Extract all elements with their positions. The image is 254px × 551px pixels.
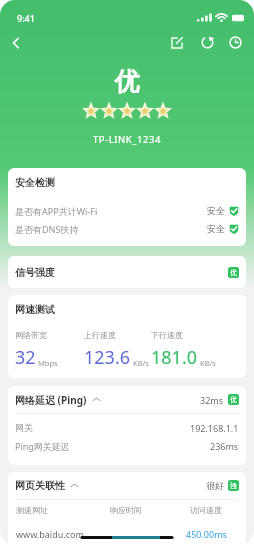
staticText: 很好: [206, 480, 224, 491]
staticText: 强: [230, 481, 237, 490]
button[interactable]: Refresh: [196, 31, 219, 54]
staticText: 网关: [15, 422, 33, 433]
staticText: 123.6: [84, 345, 131, 370]
staticText: Ping网关延迟: [15, 440, 70, 452]
staticText: 信号强度: [15, 266, 55, 279]
staticText: 下行速度: [151, 330, 183, 340]
button[interactable]: 是否有DNS扶持: [15, 220, 239, 237]
button[interactable]: 信号强度: [15, 256, 239, 288]
staticText: Mbps: [38, 358, 58, 368]
button[interactable]: Back: [4, 31, 28, 55]
staticText: 9:41: [17, 12, 35, 24]
staticText: 安全: [207, 223, 225, 234]
staticText: 访问速度: [190, 505, 222, 515]
staticText: 181.0: [151, 345, 198, 370]
staticText: 是否有DNS扶持: [15, 223, 79, 235]
staticText: 安全检测: [15, 176, 55, 189]
staticText: TP-LINK_1234: [0, 133, 254, 146]
staticText: 测速网址: [16, 505, 48, 515]
staticText: KB/s: [133, 358, 149, 368]
button[interactable]: 是否有APP共计Wi-Fi: [15, 202, 239, 219]
button[interactable]: 网页关联性: [15, 472, 239, 499]
staticText: 是否有APP共计Wi-Fi: [15, 205, 98, 217]
staticText: 网络带宽: [15, 330, 47, 340]
button[interactable]: Open in browser: [165, 31, 188, 54]
staticText: 响应时间: [110, 505, 142, 515]
staticText: 32ms: [200, 394, 224, 406]
staticText: 优: [230, 395, 237, 404]
staticText: 192.168.1.1: [190, 422, 239, 434]
staticText: www.baidu.com: [16, 528, 84, 540]
staticText: 网页关联性: [15, 479, 65, 492]
staticText: 32: [15, 345, 36, 370]
button[interactable]: 网络延迟 (Ping): [15, 386, 239, 413]
staticText: 450.00ms: [186, 528, 227, 540]
staticText: 网络延迟 (Ping): [15, 393, 87, 407]
staticText: 上行速度: [84, 330, 116, 340]
staticText: 优: [0, 66, 254, 97]
staticText: 安全: [207, 205, 225, 216]
staticText: 优: [230, 268, 237, 277]
button[interactable]: History: [224, 31, 247, 54]
staticText: KB/s: [200, 358, 216, 368]
staticText: 236ms: [210, 440, 239, 452]
staticText: 网速测试: [15, 303, 55, 316]
